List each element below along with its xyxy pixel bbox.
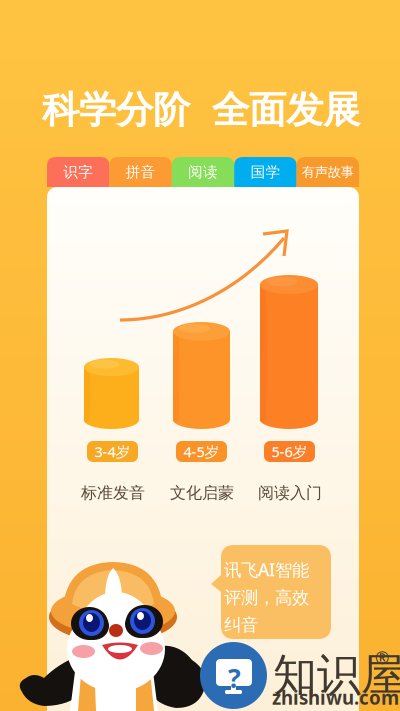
button[interactable]: 国学 <box>234 157 297 187</box>
button[interactable]: 有声故事 <box>297 157 359 187</box>
staticText: zhishiwu.com <box>272 685 399 710</box>
staticText: 5-6岁 <box>271 442 307 461</box>
staticText: 文化启蒙 <box>170 483 234 503</box>
staticText: 标准发音 <box>81 483 145 503</box>
staticText: 拼音 <box>126 163 156 181</box>
staticText: 国学 <box>250 163 280 181</box>
button[interactable]: 识字 <box>47 157 109 187</box>
staticText: 阅读入门 <box>258 483 322 503</box>
staticText: ? <box>228 660 241 695</box>
staticText: 科学分阶 全面发展 <box>42 87 360 133</box>
staticText: 有声故事 <box>302 164 354 180</box>
staticText: 评测，高效 <box>224 587 309 608</box>
staticText: 识字 <box>63 163 93 181</box>
staticText: 4-5岁 <box>183 442 219 461</box>
button[interactable]: 阅读 <box>172 157 234 187</box>
staticText: 3-4岁 <box>94 442 130 461</box>
staticText: 知识屋 <box>273 648 400 702</box>
staticText: 讯飞AI智能 <box>224 558 309 581</box>
staticText: 阅读 <box>188 163 218 181</box>
staticText: 纠音 <box>224 614 258 636</box>
staticText: ® <box>375 646 389 669</box>
button[interactable]: 拼音 <box>109 157 172 187</box>
